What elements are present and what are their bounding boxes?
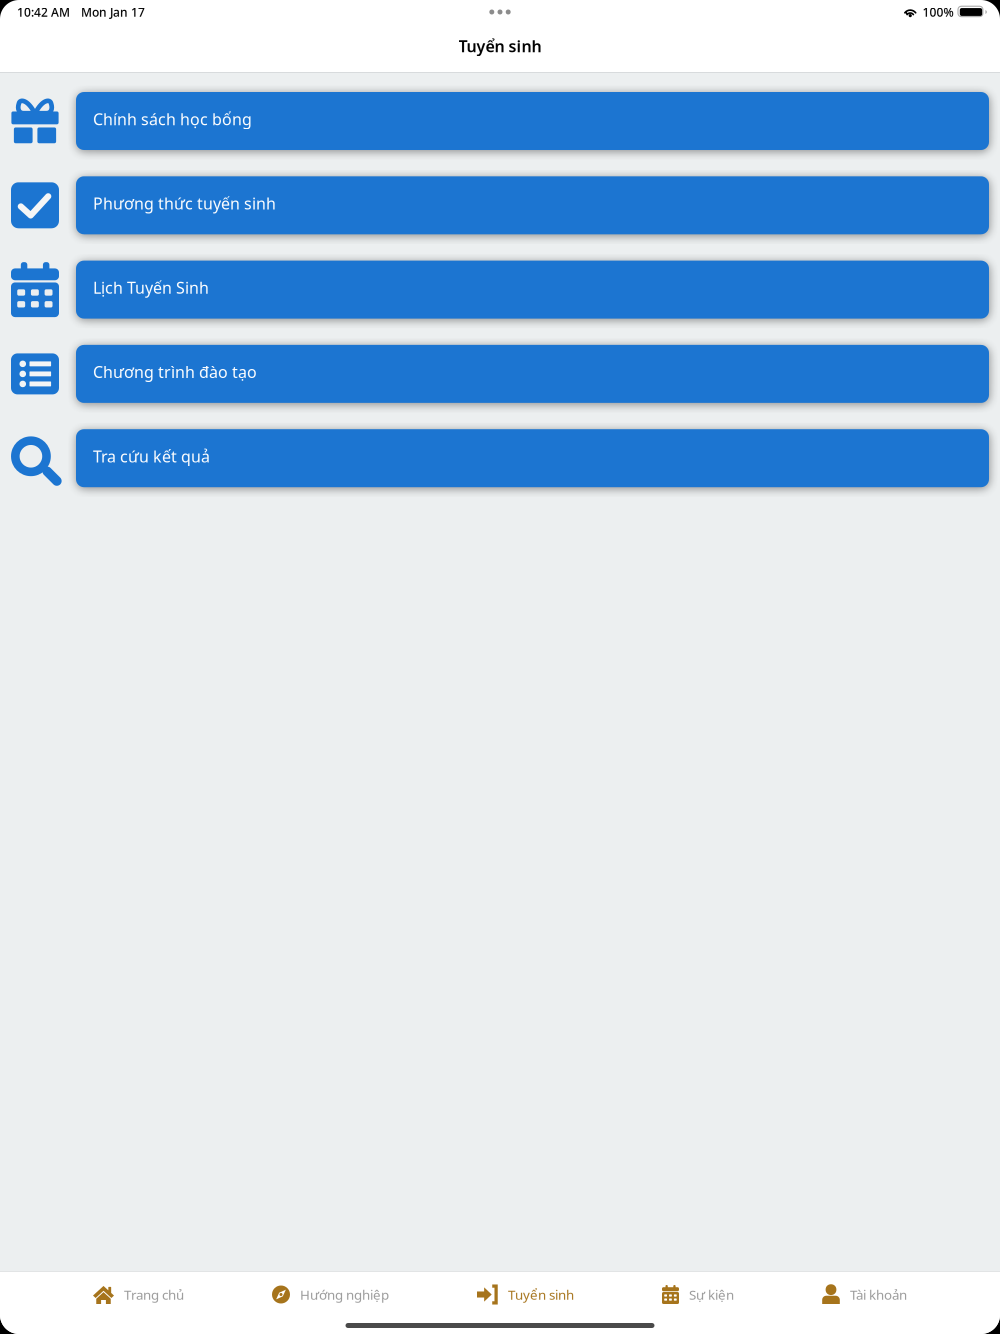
- staticText: 100%: [922, 4, 953, 20]
- staticText: Mon Jan 17: [81, 4, 145, 20]
- staticText: Chương trình đào tạo: [93, 361, 257, 382]
- button[interactable]: Phương thức tuyển sinh: [0, 172, 1000, 238]
- staticText: Tài khoản: [850, 1286, 907, 1303]
- button[interactable]: Chính sách học bổng: [0, 88, 1000, 154]
- staticText: Phương thức tuyển sinh: [93, 193, 276, 214]
- button[interactable]: Trang chủ: [93, 1272, 184, 1317]
- staticText: Tuyển sinh: [508, 1286, 574, 1303]
- staticText: Sự kiện: [689, 1286, 734, 1303]
- button[interactable]: Hướng nghiệp: [272, 1272, 389, 1317]
- button[interactable]: Sự kiện: [662, 1272, 734, 1317]
- button[interactable]: Tra cứu kết quả: [0, 425, 1000, 491]
- button[interactable]: Tài khoản: [822, 1272, 907, 1317]
- staticText: Chính sách học bổng: [93, 108, 252, 130]
- staticText: Lịch Tuyển Sinh: [93, 277, 209, 298]
- staticText: 10:42 AM: [17, 4, 70, 20]
- button[interactable]: Chương trình đào tạo: [0, 341, 1000, 407]
- staticText: Trang chủ: [124, 1286, 184, 1303]
- staticText: Tuyển sinh: [458, 35, 541, 57]
- button[interactable]: Tuyển sinh: [477, 1272, 574, 1317]
- button[interactable]: Lịch Tuyển Sinh: [0, 257, 1000, 323]
- staticText: Hướng nghiệp: [300, 1286, 389, 1303]
- staticText: Tra cứu kết quả: [93, 446, 210, 467]
